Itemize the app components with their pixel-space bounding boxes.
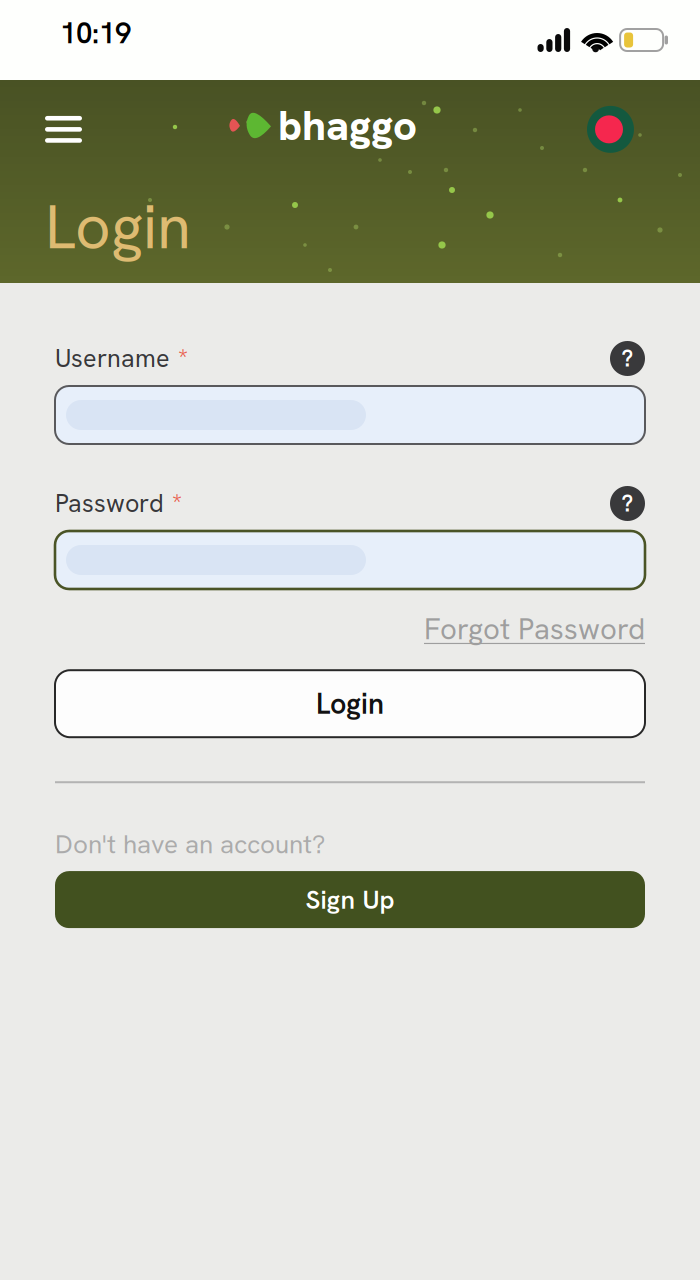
staticText: bhaggo <box>278 98 417 153</box>
staticText: 10:19 <box>60 14 131 52</box>
button[interactable]: Username <box>55 386 645 444</box>
button[interactable]: Forgot Password <box>424 610 645 648</box>
staticText: Username <box>55 342 170 375</box>
staticText: Login <box>45 186 191 267</box>
staticText: ? <box>621 344 633 373</box>
button[interactable]: Sign Up <box>55 871 645 928</box>
button[interactable]: Help <box>610 486 645 521</box>
button[interactable]: Menu <box>45 116 82 143</box>
button[interactable]: Password <box>55 531 645 589</box>
staticText: * <box>172 487 182 520</box>
staticText: * <box>178 342 188 375</box>
staticText: Password <box>55 487 164 520</box>
staticText: Don't have an account? <box>55 827 325 861</box>
staticText: Login <box>316 685 384 722</box>
button[interactable]: Help <box>610 341 645 376</box>
button[interactable]: Language: Bangladesh <box>587 106 634 153</box>
staticText: Sign Up <box>305 883 394 917</box>
staticText: Forgot Password <box>424 610 645 648</box>
button[interactable]: Login <box>55 670 645 737</box>
staticText: ? <box>621 489 633 518</box>
